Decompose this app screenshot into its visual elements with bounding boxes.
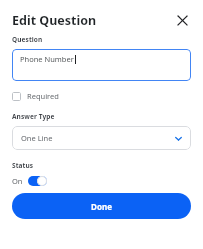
button[interactable]: One Line [12,126,191,150]
staticText: Status [12,161,34,170]
button[interactable]: On [12,176,47,186]
button[interactable]: Close [173,11,191,29]
button[interactable]: Done [12,193,191,219]
staticText: Edit Question [12,12,97,29]
staticText: Required [27,91,59,101]
button[interactable]: Phone Number [12,49,191,81]
staticText: Question [12,35,43,44]
staticText: Phone Number [20,54,74,64]
staticText: Answer Type [12,112,55,121]
button[interactable]: Required [12,90,59,102]
staticText: Done [91,201,112,212]
staticText: On [12,176,23,186]
staticText: One Line [21,133,53,143]
